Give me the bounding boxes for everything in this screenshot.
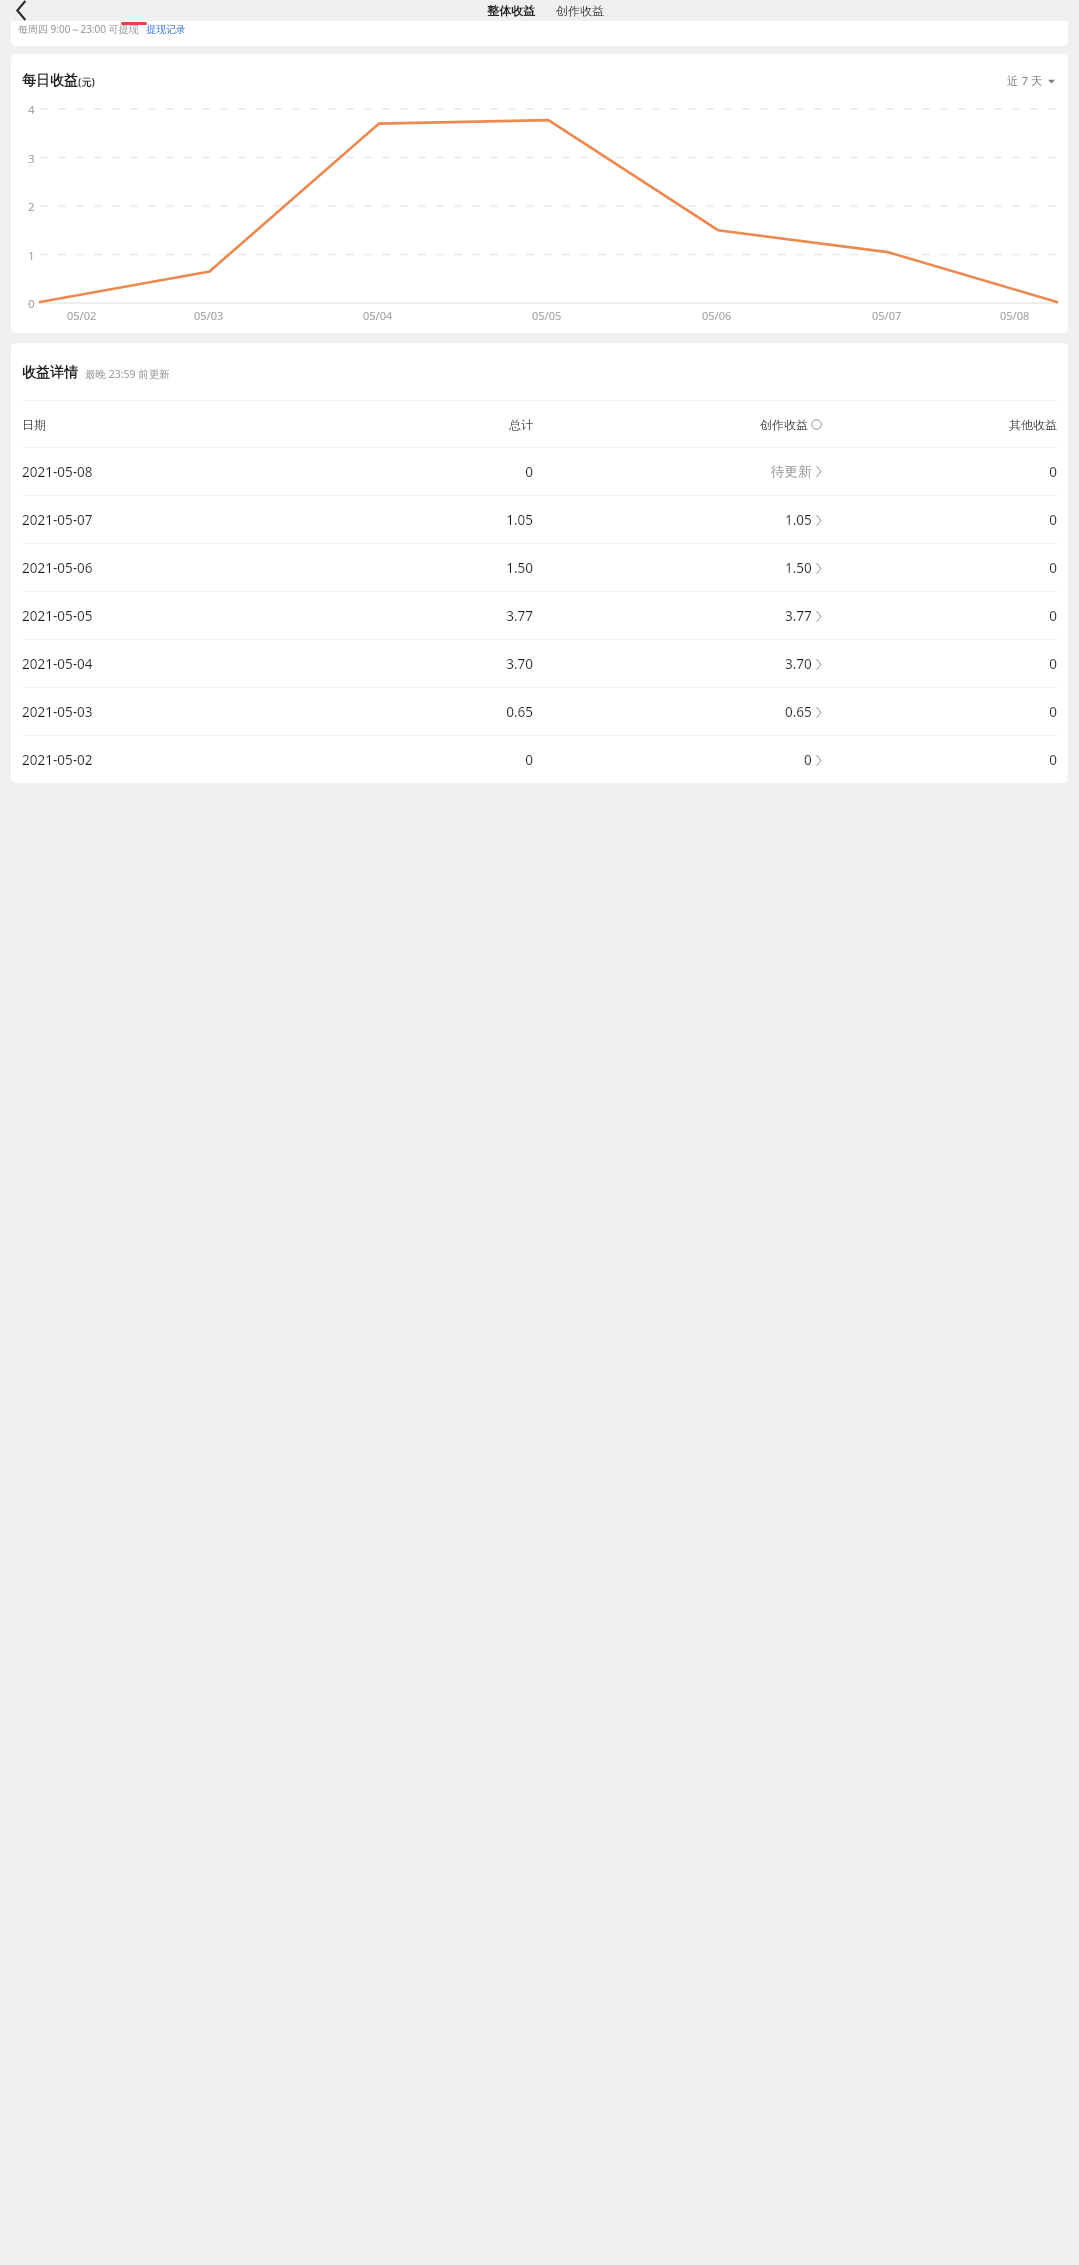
staticText: 创作收益: [556, 3, 604, 18]
staticText: 2021-05-02: [22, 751, 93, 769]
button[interactable]: 2021-05-06: [11, 544, 1068, 591]
staticText: 0: [349, 463, 533, 481]
staticText: 05/08: [1000, 308, 1030, 323]
button[interactable]: 近 7 天: [1004, 70, 1058, 92]
button[interactable]: 2021-05-04: [11, 640, 1068, 687]
staticText: 05/03: [194, 308, 224, 323]
button[interactable]: 提现记录: [146, 23, 186, 36]
button[interactable]: Back: [6, 0, 36, 21]
staticText: 05/04: [363, 308, 393, 323]
staticText: 最晚 23:59 前更新: [85, 367, 170, 381]
staticText: 1.05: [785, 511, 812, 529]
staticText: 0: [349, 751, 533, 769]
staticText: 整体收益: [487, 3, 535, 18]
staticText: 2021-05-04: [22, 655, 93, 673]
staticText: 2021-05-07: [22, 511, 93, 529]
staticText: 2021-05-06: [22, 559, 93, 577]
staticText: 05/06: [702, 308, 732, 323]
staticText: 提现记录: [146, 23, 186, 36]
staticText: 0: [822, 655, 1057, 673]
staticText: 0: [822, 463, 1057, 481]
staticText: 收益详情: [22, 364, 78, 382]
staticText: 3.70: [349, 655, 533, 673]
staticText: 0: [804, 751, 812, 769]
staticText: 日期: [22, 417, 46, 432]
staticText: 2021-05-03: [22, 703, 93, 721]
staticText: 0: [822, 559, 1057, 577]
staticText: 4: [28, 102, 35, 116]
staticText: 05/05: [532, 308, 562, 323]
staticText: 0: [822, 703, 1057, 721]
button[interactable]: 2021-05-08: [11, 448, 1068, 495]
staticText: 2021-05-08: [22, 463, 93, 481]
staticText: 近 7 天: [1007, 73, 1043, 89]
staticText: 总计: [349, 417, 533, 432]
staticText: 3.77: [785, 607, 812, 625]
button[interactable]: 创作收益: [551, 1, 609, 20]
staticText: 05/02: [67, 308, 97, 323]
staticText: 0: [822, 751, 1057, 769]
staticText: 1.50: [349, 559, 533, 577]
staticText: 3.70: [785, 655, 812, 673]
staticText: 1: [28, 248, 35, 262]
staticText: 05/07: [872, 308, 902, 323]
staticText: 2: [28, 199, 35, 213]
staticText: 每日收益: [22, 72, 78, 90]
staticText: 0.65: [349, 703, 533, 721]
staticText: 每周四 9:00～23:00 可提现: [18, 22, 139, 36]
staticText: 1.05: [349, 511, 533, 529]
staticText: (元): [78, 75, 95, 89]
staticText: 待更新: [771, 463, 812, 480]
button[interactable]: 2021-05-02: [11, 736, 1068, 783]
button[interactable]: 2021-05-05: [11, 592, 1068, 639]
staticText: 0: [822, 607, 1057, 625]
staticText: 创作收益: [760, 417, 808, 432]
staticText: 0: [822, 511, 1057, 529]
button[interactable]: 整体收益: [482, 1, 540, 20]
button[interactable]: 2021-05-07: [11, 496, 1068, 543]
button[interactable]: 2021-05-03: [11, 688, 1068, 735]
staticText: 2021-05-05: [22, 607, 93, 625]
staticText: 其他收益: [822, 417, 1057, 432]
staticText: 3.77: [349, 607, 533, 625]
staticText: 1.50: [785, 559, 812, 577]
staticText: 0: [28, 296, 35, 310]
staticText: 0.65: [785, 703, 812, 721]
staticText: 3: [28, 151, 35, 165]
